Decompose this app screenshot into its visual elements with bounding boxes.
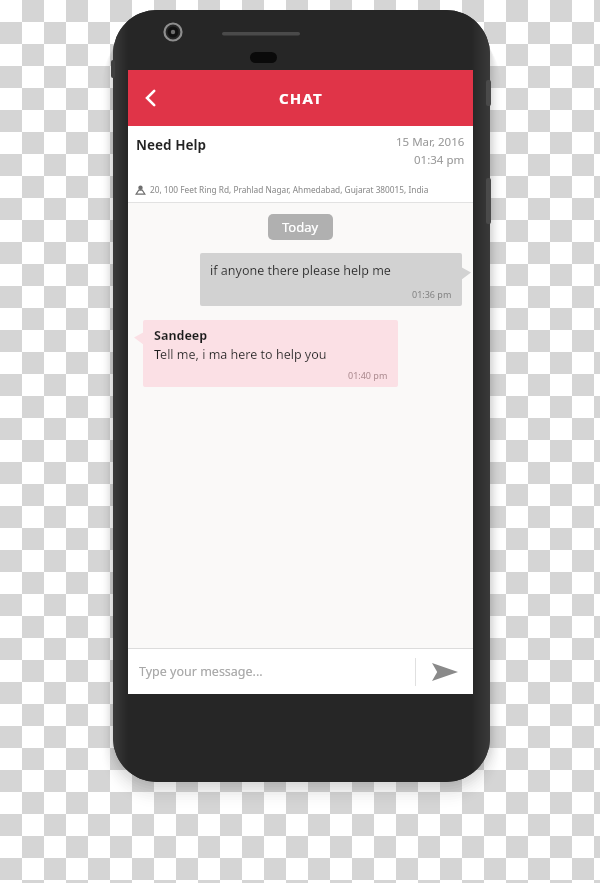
staticText: 01:34 pm: [414, 152, 465, 168]
staticText: Need Help: [136, 136, 396, 154]
staticText: if anyone there please help me: [210, 262, 391, 279]
button[interactable]: Sandeep: [143, 320, 398, 387]
button[interactable]: Send: [416, 649, 473, 694]
staticText: Today: [282, 218, 319, 236]
staticText: 20, 100 Feet Ring Rd, Prahlad Nagar, Ahm…: [150, 184, 429, 195]
staticText: 01:36 pm: [412, 288, 452, 300]
staticText: 15 Mar, 2016: [396, 134, 465, 150]
staticText: CHAT: [279, 88, 323, 108]
button[interactable]: if anyone there please help me: [200, 253, 462, 306]
button[interactable]: Back: [128, 75, 174, 121]
button[interactable]: Type your message...: [128, 649, 415, 694]
staticText: Sandeep: [154, 327, 208, 344]
staticText: Type your message...: [139, 663, 263, 680]
staticText: 01:40 pm: [348, 369, 388, 381]
staticText: Tell me, i ma here to help you: [154, 346, 327, 363]
